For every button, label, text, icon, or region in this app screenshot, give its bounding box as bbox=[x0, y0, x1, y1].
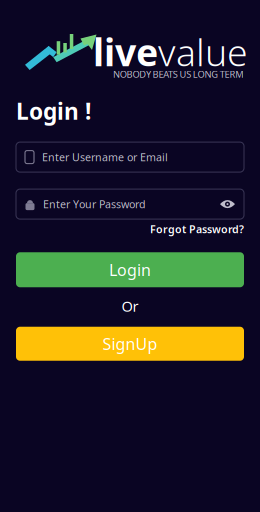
staticText: NOBODY BEATS US LONG TERM bbox=[113, 68, 243, 80]
staticText: value bbox=[158, 27, 248, 77]
button[interactable]: SignUp bbox=[16, 327, 244, 361]
staticText: Login bbox=[109, 259, 151, 280]
staticText: Enter Username or Email bbox=[42, 150, 168, 164]
staticText: Forgot Password? bbox=[150, 222, 244, 236]
staticText: Enter Your Password bbox=[43, 197, 146, 211]
button[interactable]: Forgot Password? bbox=[150, 222, 244, 236]
staticText: SignUp bbox=[102, 333, 157, 354]
button[interactable]: Login bbox=[16, 252, 244, 287]
staticText: Login ! bbox=[16, 96, 91, 126]
staticText: live bbox=[93, 27, 158, 77]
staticText: Or bbox=[121, 296, 138, 316]
